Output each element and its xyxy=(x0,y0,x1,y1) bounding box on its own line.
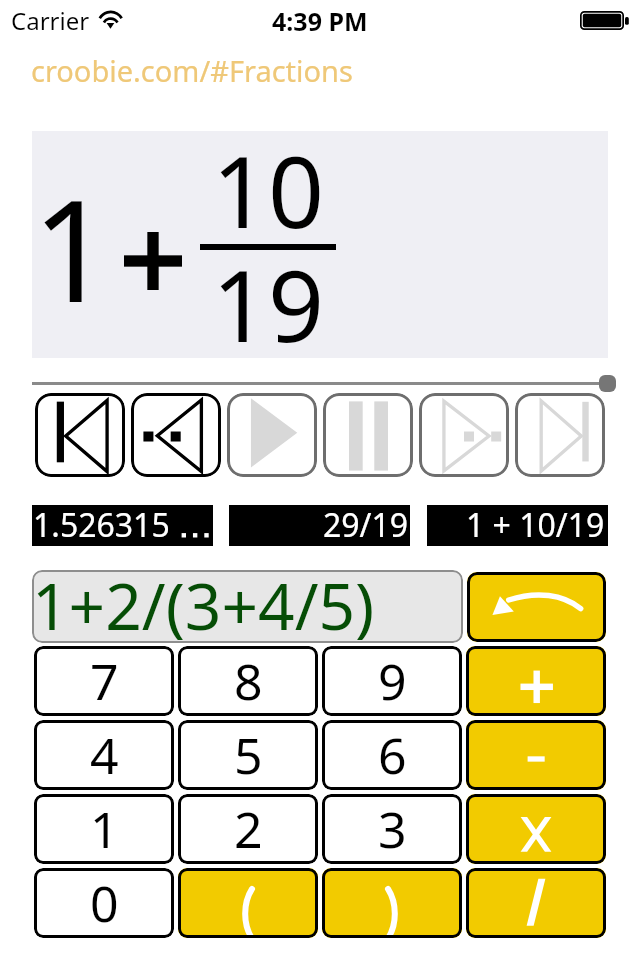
button[interactable]: 29/19 xyxy=(229,505,410,546)
staticText: 0 xyxy=(90,869,119,937)
staticText: 1 xyxy=(90,795,119,863)
staticText: 6 xyxy=(378,721,407,789)
button[interactable] xyxy=(32,570,463,643)
button[interactable]: Rewind xyxy=(131,393,221,477)
staticText: 9 xyxy=(378,647,407,715)
button[interactable] xyxy=(466,646,606,716)
button[interactable]: 7 xyxy=(34,646,174,716)
staticText: 1 + 10/19 xyxy=(466,503,605,544)
button[interactable]: Seek xyxy=(599,375,616,392)
button[interactable]: Fast forward xyxy=(419,393,509,477)
staticText: Carrier xyxy=(11,4,90,37)
staticText: 1+2/(3+4/5) xyxy=(32,562,375,649)
button[interactable]: 8 xyxy=(178,646,318,716)
staticText: 29/19 xyxy=(323,503,409,544)
button[interactable] xyxy=(466,794,606,864)
button[interactable]: Pause xyxy=(323,393,413,477)
button[interactable]: Skip to end xyxy=(515,393,605,477)
button[interactable]: Skip to start xyxy=(35,393,125,477)
button[interactable]: 1 + 10/19 xyxy=(427,505,608,546)
button[interactable] xyxy=(178,868,318,938)
button[interactable]: Play xyxy=(227,393,317,477)
staticText: 19 xyxy=(212,237,325,370)
staticText: 4 xyxy=(90,721,119,789)
staticText: 7 xyxy=(90,647,119,715)
staticText: 10 xyxy=(212,123,325,256)
button[interactable]: 2 xyxy=(178,794,318,864)
staticText: 3 xyxy=(378,795,407,863)
staticText: croobie.com/#Fractions xyxy=(31,51,353,90)
staticText: 1.526315 xyxy=(33,503,170,544)
staticText: 8 xyxy=(234,647,263,715)
staticText: 5 xyxy=(234,721,263,789)
button[interactable]: 6 xyxy=(322,720,462,790)
button[interactable] xyxy=(322,868,462,938)
button[interactable]: 9 xyxy=(322,646,462,716)
button[interactable]: 3 xyxy=(322,794,462,864)
button[interactable] xyxy=(466,868,606,938)
staticText: 4:39 PM xyxy=(272,4,368,38)
button[interactable]: 4 xyxy=(34,720,174,790)
button[interactable]: 1.526315 xyxy=(32,505,213,546)
button[interactable]: 0 xyxy=(34,868,174,938)
button[interactable] xyxy=(466,720,606,790)
staticText: 2 xyxy=(234,795,263,863)
staticText: 1 xyxy=(32,152,113,343)
button[interactable]: 5 xyxy=(178,720,318,790)
button[interactable]: Undo xyxy=(467,572,606,642)
button[interactable]: 1 xyxy=(34,794,174,864)
